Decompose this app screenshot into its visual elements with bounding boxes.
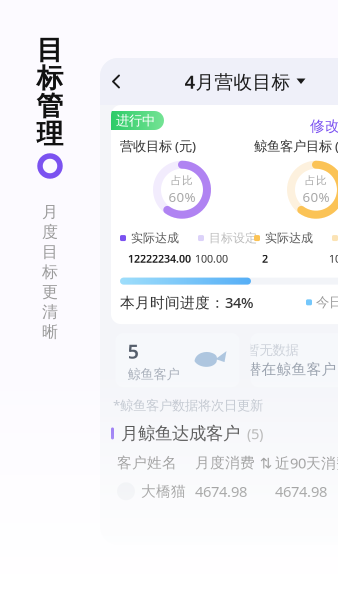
staticText: 度 bbox=[42, 222, 58, 242]
staticText: 10 bbox=[329, 251, 338, 266]
staticText: 近90天消费 bbox=[275, 453, 338, 473]
staticText: 标 bbox=[36, 62, 63, 94]
staticText: 潜在鲸鱼客户 bbox=[246, 360, 336, 378]
staticText: 管 bbox=[36, 90, 63, 122]
staticText: 12222234.00 bbox=[128, 251, 191, 266]
staticText: 大橋猫 bbox=[141, 482, 186, 500]
button[interactable]: 4月营收目标 bbox=[184, 69, 305, 94]
staticText: 鲸鱼客户目标 (人) bbox=[254, 137, 338, 155]
button[interactable]: 5 bbox=[115, 333, 239, 387]
staticText: 营收目标 (元) bbox=[120, 137, 196, 155]
staticText: 理 bbox=[36, 118, 63, 150]
staticText: 清 bbox=[42, 302, 58, 322]
staticText: 晰 bbox=[42, 322, 58, 342]
staticText: *鲸鱼客户数据将次日更新 bbox=[113, 396, 263, 414]
staticText: 4月营收目标 bbox=[184, 69, 290, 94]
staticText: (5) bbox=[247, 424, 263, 443]
staticText: 60% bbox=[302, 188, 329, 206]
button[interactable]: 修改目标 bbox=[310, 117, 338, 135]
staticText: 暂无数据 bbox=[246, 342, 298, 358]
staticText: 今日 bbox=[316, 294, 338, 311]
staticText: 月鲸鱼达成客户 bbox=[121, 423, 240, 444]
staticText: 修改目标 bbox=[310, 117, 338, 135]
staticText: 4674.98 bbox=[195, 482, 247, 501]
staticText: 实际达成 bbox=[265, 231, 313, 245]
staticText: 月 bbox=[42, 202, 58, 222]
staticText: 占比 bbox=[171, 174, 193, 187]
staticText: 目 bbox=[42, 242, 58, 262]
staticText: 5 bbox=[127, 338, 138, 364]
staticText: 4674.98 bbox=[275, 482, 327, 501]
staticText: 更 bbox=[42, 282, 58, 302]
staticText: 实际达成 bbox=[131, 231, 179, 245]
button[interactable]: 返回 bbox=[100, 58, 136, 105]
staticText: 目 bbox=[36, 34, 63, 66]
staticText: 占比 bbox=[305, 174, 327, 187]
staticText: 目标设定 bbox=[209, 231, 257, 245]
staticText: 进行中 bbox=[116, 112, 155, 129]
staticText: 客户姓名 bbox=[117, 454, 177, 472]
staticText: 鲸鱼客户 bbox=[127, 366, 179, 383]
staticText: 60% bbox=[168, 188, 195, 206]
button[interactable]: 暂无数据 bbox=[250, 333, 338, 387]
staticText: 2 bbox=[262, 251, 268, 266]
staticText: 本月时间进度：34% bbox=[120, 293, 253, 312]
staticText: 月度消费 ⇅ bbox=[195, 454, 272, 472]
staticText: 标 bbox=[42, 262, 58, 282]
staticText: 100.00 bbox=[195, 251, 228, 266]
